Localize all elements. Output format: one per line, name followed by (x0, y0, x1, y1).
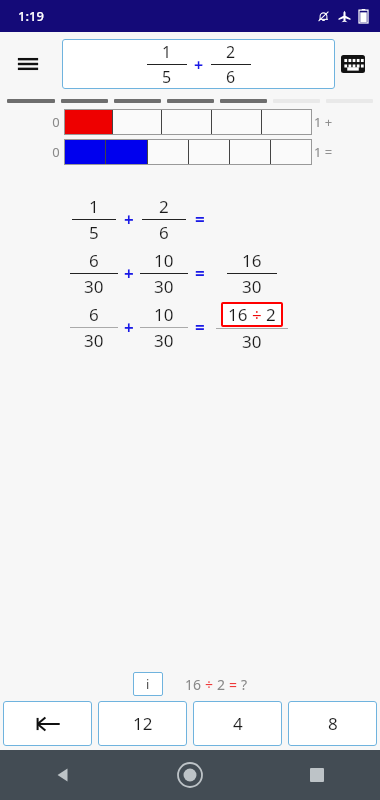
staticText: 6 (89, 249, 99, 272)
staticText: 2 (266, 303, 276, 326)
button[interactable] (64, 109, 312, 135)
staticText: 16 (242, 249, 262, 272)
staticText: = (229, 675, 238, 694)
staticText: 6 (226, 66, 236, 88)
button[interactable] (64, 139, 312, 165)
staticText: 5 (162, 66, 172, 88)
staticText: 2 (159, 195, 169, 218)
staticText: + (194, 54, 204, 76)
staticText: 10 (154, 249, 174, 272)
staticText: = (195, 208, 205, 231)
staticText: 5 (89, 221, 99, 244)
button[interactable]: Menu (8, 44, 48, 84)
staticText: 1:19 (18, 7, 44, 25)
button[interactable]: Keyboard (332, 43, 374, 85)
staticText: 30 (242, 330, 262, 353)
button[interactable]: 4 (193, 701, 282, 746)
button[interactable]: 8 (288, 701, 377, 746)
staticText: 30 (84, 275, 104, 298)
button[interactable]: Back (0, 750, 126, 800)
staticText: 1 + (314, 113, 333, 131)
staticText: ? (241, 675, 248, 694)
staticText: + (124, 316, 134, 339)
button[interactable] (7, 99, 55, 103)
staticText: 30 (154, 275, 174, 298)
staticText: 12 (133, 712, 153, 735)
button[interactable] (167, 99, 214, 103)
staticText: 16 (228, 303, 248, 326)
button[interactable]: i (133, 672, 163, 696)
button[interactable]: Recent apps (253, 750, 380, 800)
staticText: 2 (217, 675, 226, 694)
button[interactable]: Home (126, 750, 253, 800)
button[interactable]: 12 (98, 701, 187, 746)
staticText: 1 (162, 41, 172, 63)
staticText: = (195, 262, 205, 285)
button[interactable]: Backspace (3, 701, 92, 746)
staticText: 10 (154, 303, 174, 326)
staticText: 2 (226, 41, 236, 63)
staticText: 30 (242, 275, 262, 298)
staticText: ÷ (205, 675, 214, 694)
button[interactable]: 16 (228, 303, 276, 326)
button[interactable] (61, 99, 108, 103)
button[interactable] (114, 99, 161, 103)
button[interactable]: 1 (62, 39, 335, 89)
staticText: 1 (89, 195, 99, 218)
staticText: 16 (185, 675, 202, 694)
staticText: + (124, 208, 134, 231)
staticText: 8 (328, 712, 338, 735)
staticText: i (146, 675, 150, 693)
staticText: 30 (154, 329, 174, 352)
staticText: 30 (84, 329, 104, 352)
staticText: + (124, 262, 134, 285)
staticText: 1 = (314, 143, 333, 161)
staticText: ÷ (252, 303, 262, 326)
staticText: 6 (159, 221, 169, 244)
button[interactable] (220, 99, 267, 103)
staticText: 0 (48, 143, 64, 161)
staticText: 6 (89, 303, 99, 326)
staticText: = (195, 316, 205, 339)
staticText: 0 (48, 113, 64, 131)
staticText: 4 (233, 712, 243, 735)
